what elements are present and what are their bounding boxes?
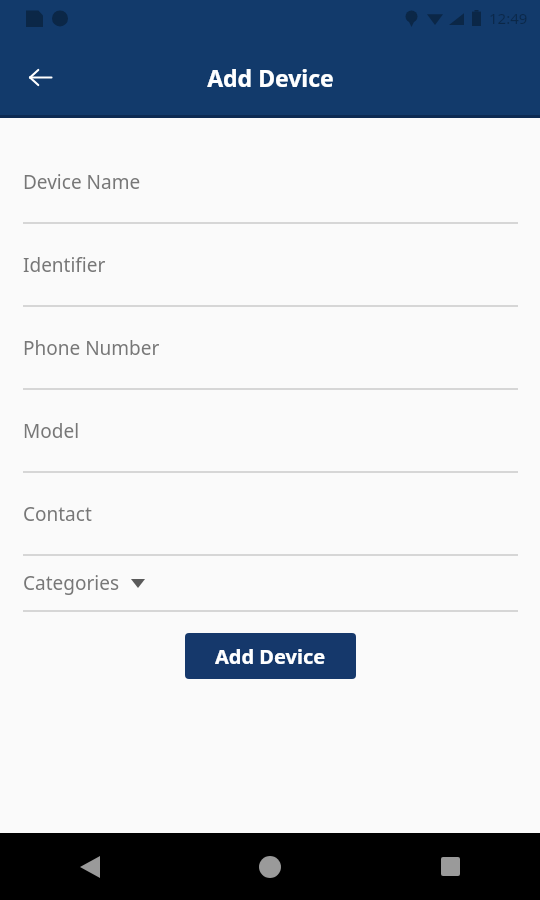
staticText: Device Name: [23, 169, 141, 195]
button[interactable]: Back: [0, 833, 180, 900]
button[interactable]: Device Name: [0, 141, 540, 224]
button[interactable]: Home: [180, 833, 360, 900]
button[interactable]: Back: [16, 53, 64, 101]
staticText: Add Device: [215, 643, 326, 670]
staticText: Contact: [23, 501, 92, 527]
button[interactable]: Contact: [0, 473, 540, 556]
button[interactable]: Add Device: [185, 633, 356, 679]
staticText: Model: [23, 418, 80, 444]
button[interactable]: Phone Number: [0, 307, 540, 390]
button[interactable]: Identifier: [0, 224, 540, 307]
staticText: Phone Number: [23, 335, 160, 361]
button[interactable]: Model: [0, 390, 540, 473]
button[interactable]: Categories: [0, 556, 540, 612]
staticText: Categories: [23, 570, 119, 596]
staticText: Add Device: [207, 62, 334, 93]
staticText: 12:49: [489, 8, 528, 28]
staticText: Identifier: [23, 252, 106, 278]
button[interactable]: Recent apps: [360, 833, 540, 900]
